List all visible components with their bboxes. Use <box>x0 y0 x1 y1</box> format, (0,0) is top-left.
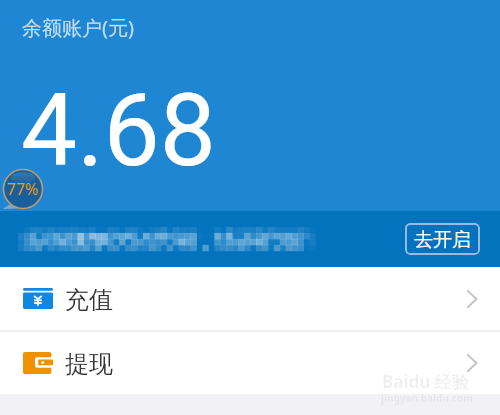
staticText: 提现 <box>65 349 113 379</box>
staticText: Baidu 经验 <box>382 370 469 393</box>
staticText: 去开启 <box>414 228 471 252</box>
staticText: 77% <box>7 178 39 200</box>
staticText: 4.68 <box>21 72 216 189</box>
staticText: jingyan.baidu.com <box>381 391 473 405</box>
button[interactable]: 充值 <box>0 267 500 330</box>
button[interactable]: 提现 <box>0 332 500 394</box>
button[interactable]: 去开启 <box>405 223 480 255</box>
staticText: 余额账户(元) <box>22 14 134 41</box>
staticText: 充值 <box>65 285 113 315</box>
